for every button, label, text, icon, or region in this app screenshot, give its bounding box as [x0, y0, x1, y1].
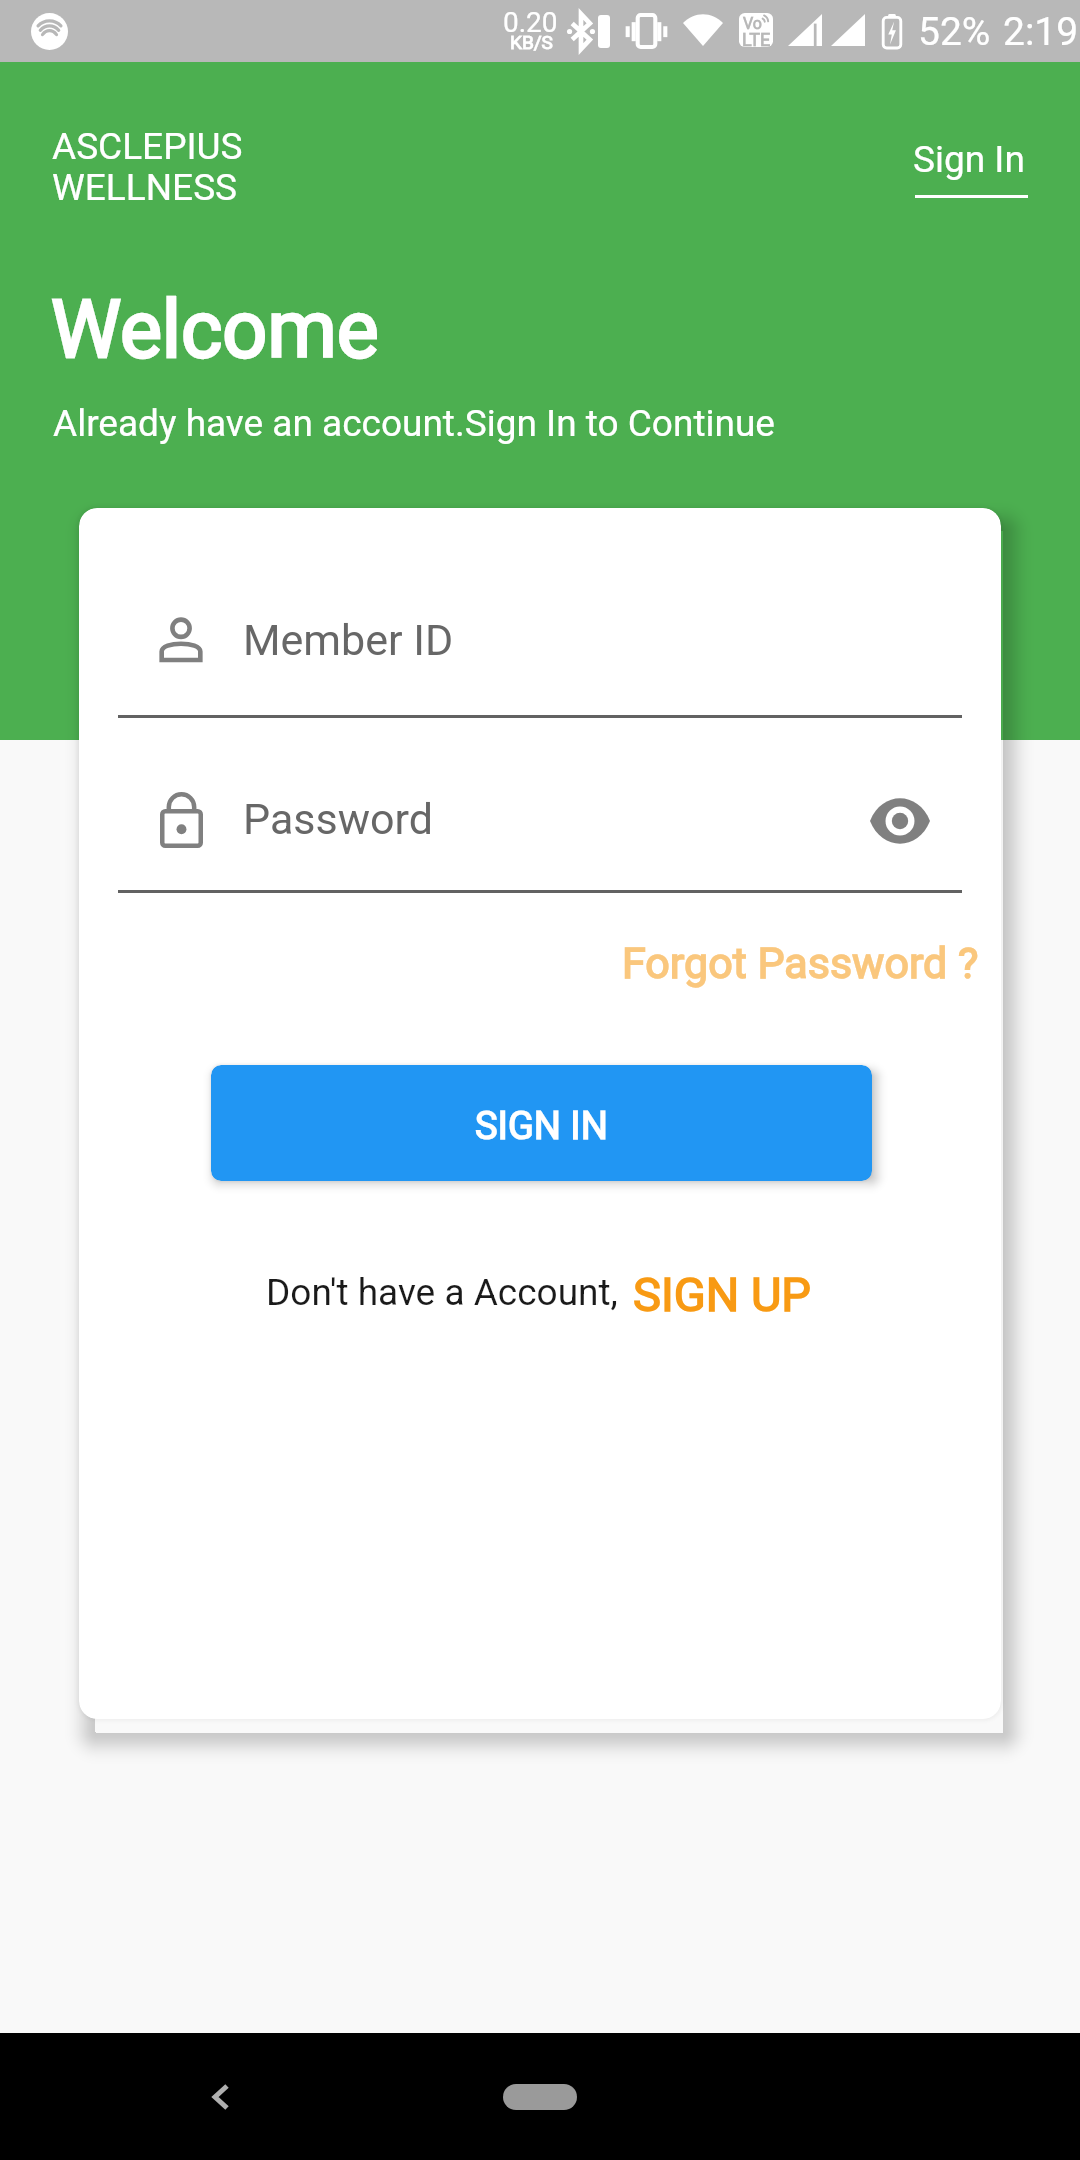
staticText: Password: [243, 794, 433, 844]
button[interactable]: Show password: [853, 774, 947, 868]
staticText: 0.20: [503, 6, 558, 39]
staticText: Sign In: [913, 138, 1025, 181]
staticText: KB/S: [510, 31, 553, 53]
staticText: SIGN IN: [475, 1104, 608, 1149]
staticText: Already have an account.Sign In to Conti…: [53, 402, 775, 445]
staticText: Don't have a Account,: [266, 1271, 618, 1314]
button[interactable]: Member ID: [118, 596, 962, 718]
staticText: WELLNESS: [52, 166, 238, 209]
staticText: Vo: [743, 14, 762, 33]
button[interactable]: SIGN IN: [211, 1065, 872, 1181]
staticText: Forgot Password ?: [622, 938, 979, 988]
staticText: Welcome: [51, 284, 379, 377]
staticText: LTE: [742, 29, 771, 50]
button[interactable]: Home: [503, 2084, 577, 2110]
staticText: ASCLEPIUS: [52, 125, 243, 168]
staticText: 2:19: [1003, 9, 1079, 55]
button[interactable]: Password: [118, 771, 962, 893]
button[interactable]: SIGN UP: [627, 1257, 827, 1327]
staticText: 52%: [918, 9, 991, 55]
staticText: SIGN UP: [633, 1267, 812, 1322]
button[interactable]: Back: [185, 2061, 257, 2133]
staticText: Member ID: [243, 615, 454, 665]
button[interactable]: Sign In: [905, 128, 1035, 208]
button[interactable]: Forgot Password ?: [602, 920, 962, 996]
